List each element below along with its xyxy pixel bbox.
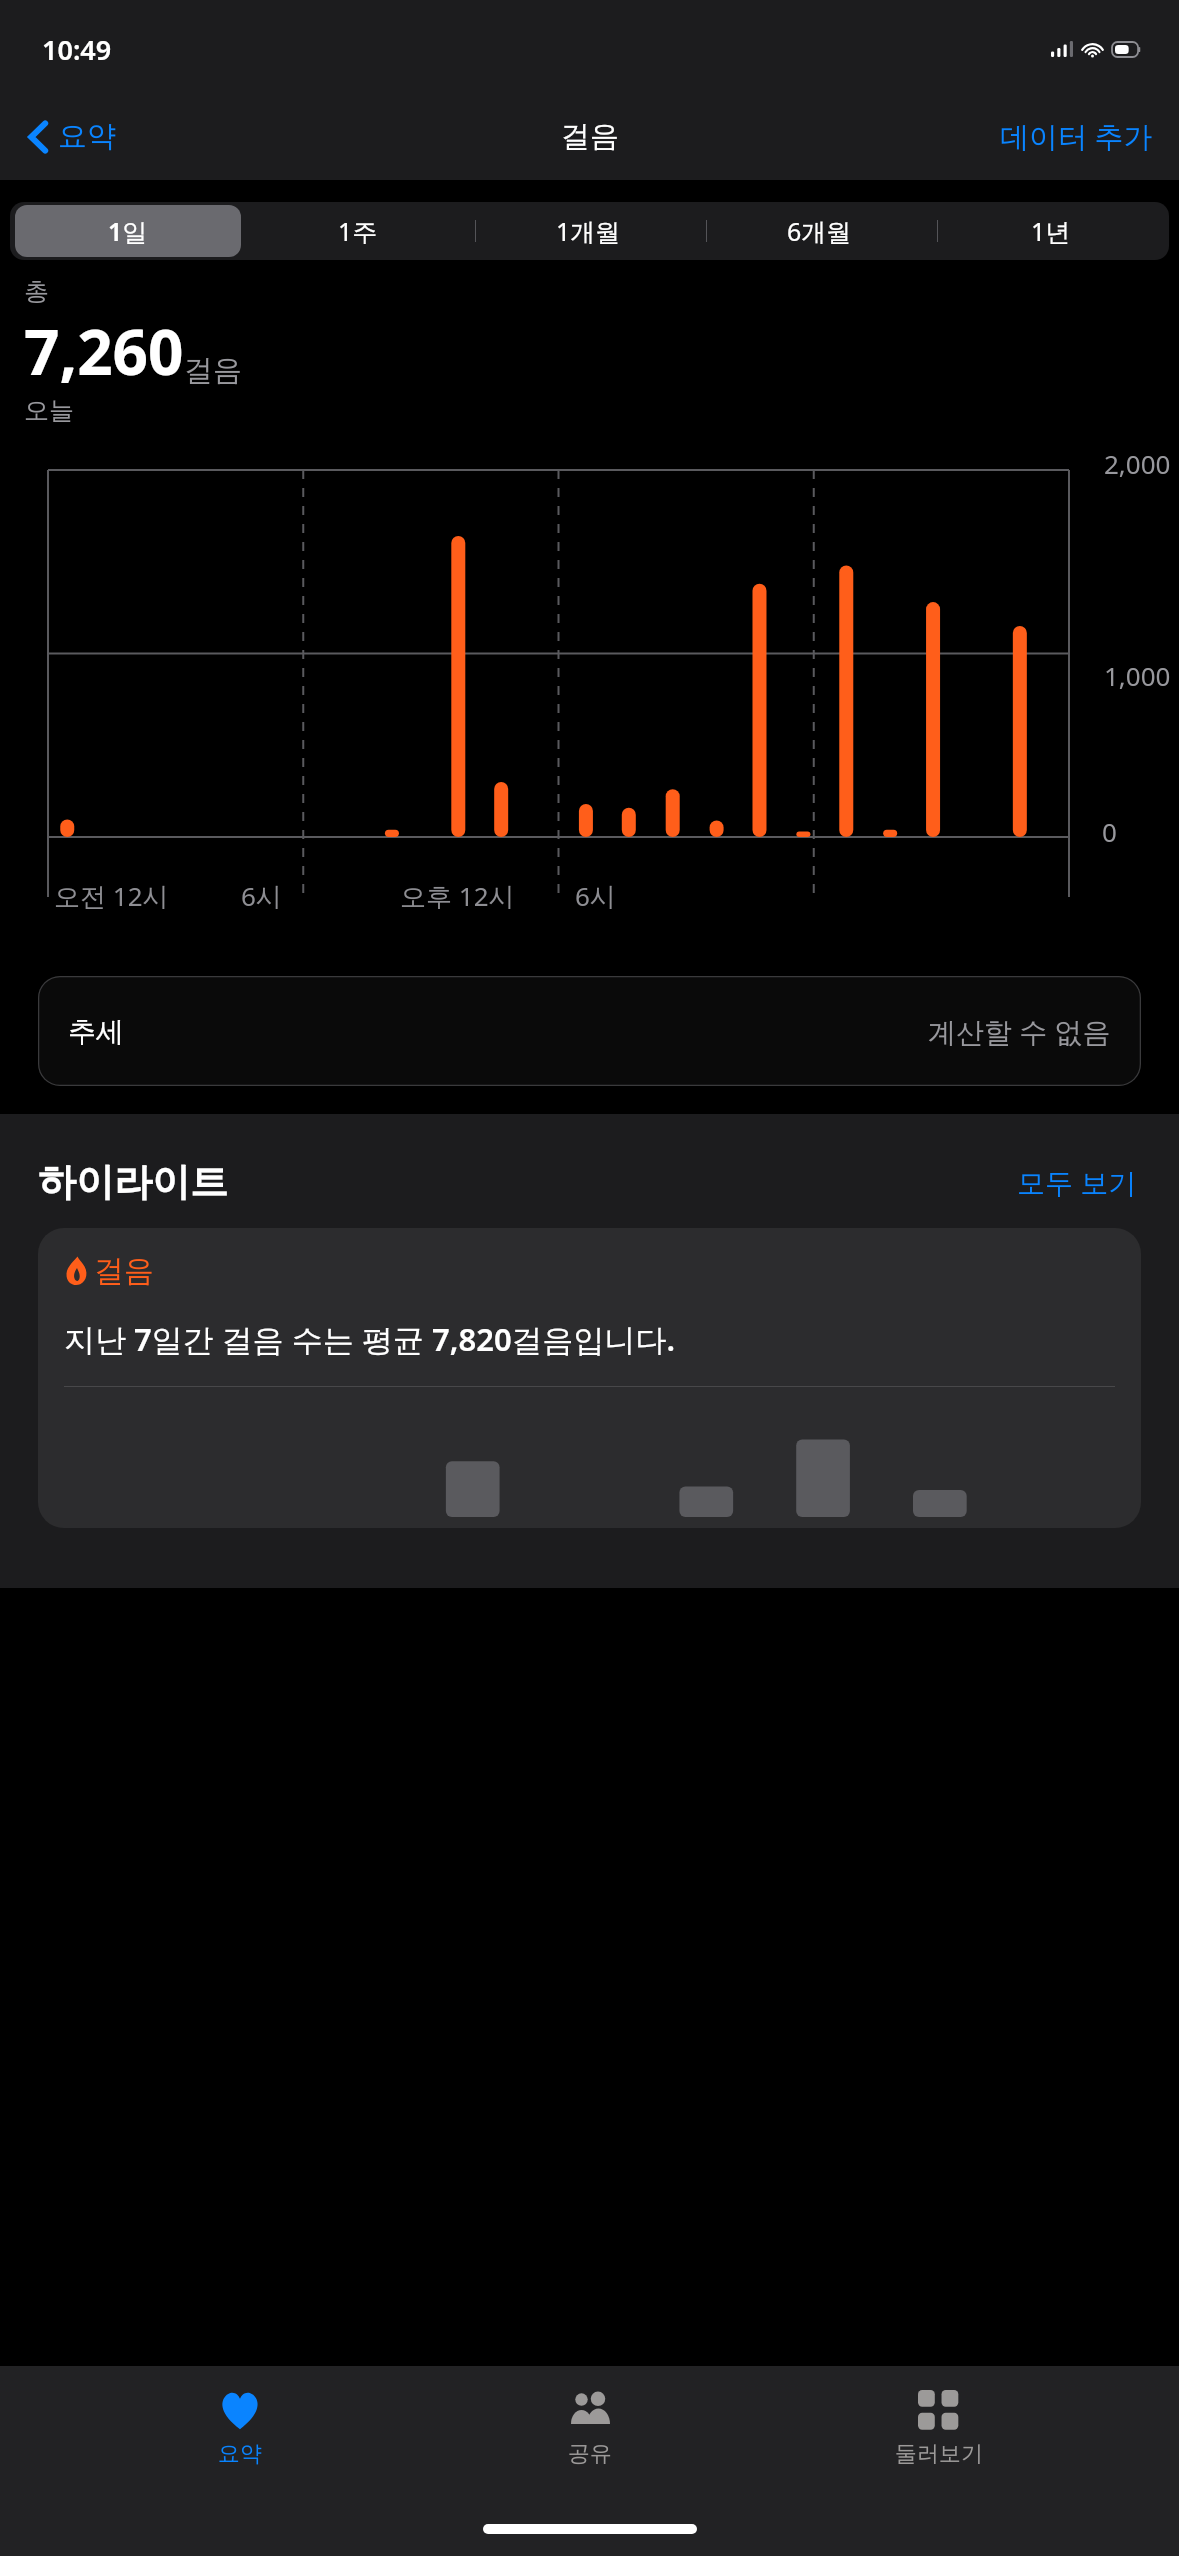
- staticText: 걸음: [561, 118, 619, 155]
- staticText: 0: [1102, 814, 1117, 849]
- staticText: 지난 7일간 걸음 수는 평균 7,820걸음입니다.: [64, 1318, 676, 1360]
- button[interactable]: 모두 보기: [1013, 1159, 1141, 1205]
- staticText: 1개월: [556, 214, 621, 248]
- staticText: 오늘: [24, 395, 74, 426]
- staticText: 2,000: [1104, 446, 1171, 481]
- staticText: 총: [24, 276, 49, 307]
- staticText: 6시: [241, 878, 282, 914]
- staticText: 요약: [218, 2440, 262, 2468]
- staticText: 6개월: [787, 214, 852, 248]
- staticText: 걸음: [184, 352, 242, 389]
- button[interactable]: 1주: [245, 205, 471, 257]
- staticText: 1일: [108, 214, 148, 248]
- button[interactable]: 6개월: [706, 205, 933, 257]
- staticText: 7,260: [24, 309, 184, 393]
- button[interactable]: 요약: [20, 110, 124, 163]
- button[interactable]: 1일: [15, 205, 241, 257]
- button[interactable]: 데이터 추가: [974, 106, 1179, 166]
- button[interactable]: 1년: [937, 205, 1164, 257]
- staticText: 추세: [68, 1014, 124, 1049]
- staticText: 1년: [1031, 214, 1071, 248]
- button[interactable]: 둘러보기: [829, 2382, 1049, 2476]
- button[interactable]: 걸음: [38, 1228, 1141, 1528]
- staticText: 하이라이트: [38, 1158, 228, 1206]
- staticText: 1주: [338, 214, 378, 248]
- staticText: 오후 12시: [400, 878, 515, 914]
- staticText: 공유: [568, 2440, 612, 2468]
- staticText: 계산할 수 없음: [928, 1012, 1111, 1050]
- staticText: 1,000: [1104, 658, 1171, 693]
- staticText: 둘러보기: [895, 2440, 983, 2468]
- button[interactable]: 추세: [38, 976, 1141, 1086]
- button[interactable]: 요약: [130, 2382, 350, 2476]
- staticText: 요약: [58, 118, 116, 155]
- staticText: 6시: [575, 878, 616, 914]
- button[interactable]: 공유: [480, 2382, 700, 2476]
- staticText: 10:49: [42, 31, 112, 68]
- staticText: 오전 12시: [54, 878, 169, 914]
- button[interactable]: 1개월: [475, 205, 702, 257]
- staticText: 걸음: [94, 1252, 154, 1290]
